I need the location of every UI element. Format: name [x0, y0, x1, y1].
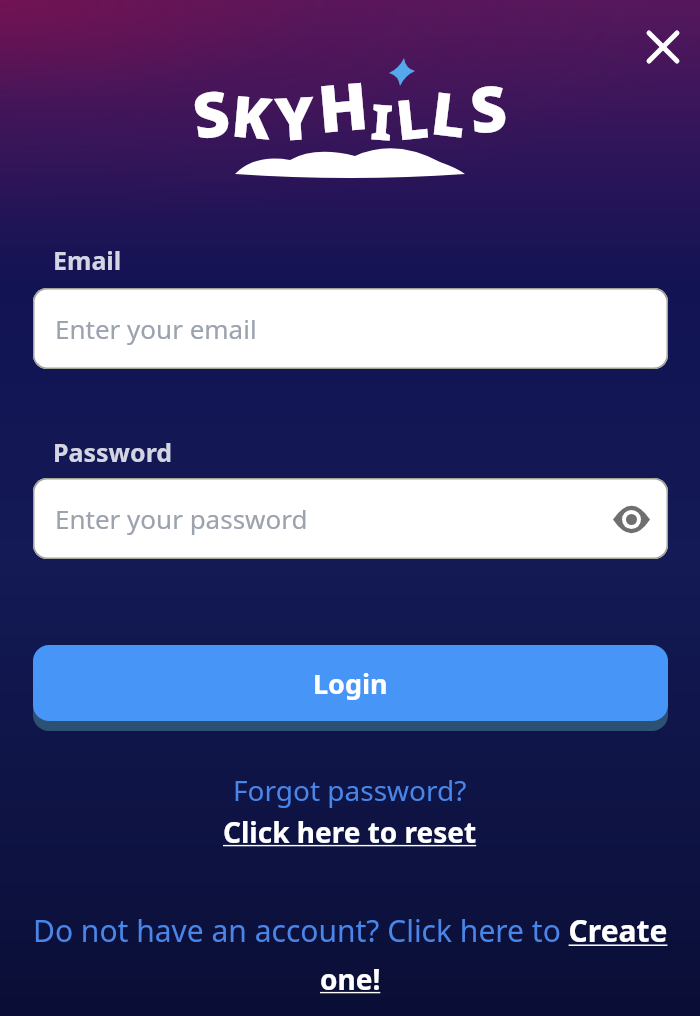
button[interactable]: Forgot password?	[233, 771, 467, 809]
staticText: L	[392, 78, 433, 156]
button[interactable]: Do not have an account? Click here to Cr…	[0, 910, 700, 951]
button[interactable]: Login	[33, 645, 668, 721]
staticText: Email	[53, 243, 122, 277]
staticText: Login	[313, 665, 388, 702]
button[interactable]	[641, 25, 685, 69]
button[interactable]: Enter your email	[33, 288, 668, 369]
staticText: Enter your email	[55, 311, 257, 346]
button[interactable]: Enter your password	[33, 478, 668, 559]
staticText: Do not have an account? Click here to Cr…	[33, 910, 668, 951]
staticText: L	[427, 71, 472, 155]
staticText: Y	[273, 76, 317, 158]
staticText: H	[314, 60, 372, 153]
staticText: Enter your password	[55, 501, 308, 536]
staticText: S	[187, 69, 235, 157]
staticText: one!	[320, 960, 381, 998]
button[interactable]	[612, 500, 650, 538]
staticText: S	[466, 64, 511, 152]
button[interactable]: one!	[0, 960, 700, 998]
button[interactable]: Click here to reset	[223, 813, 477, 851]
staticText: K	[229, 75, 275, 157]
staticText: Password	[53, 435, 173, 469]
staticText: I	[369, 87, 395, 156]
